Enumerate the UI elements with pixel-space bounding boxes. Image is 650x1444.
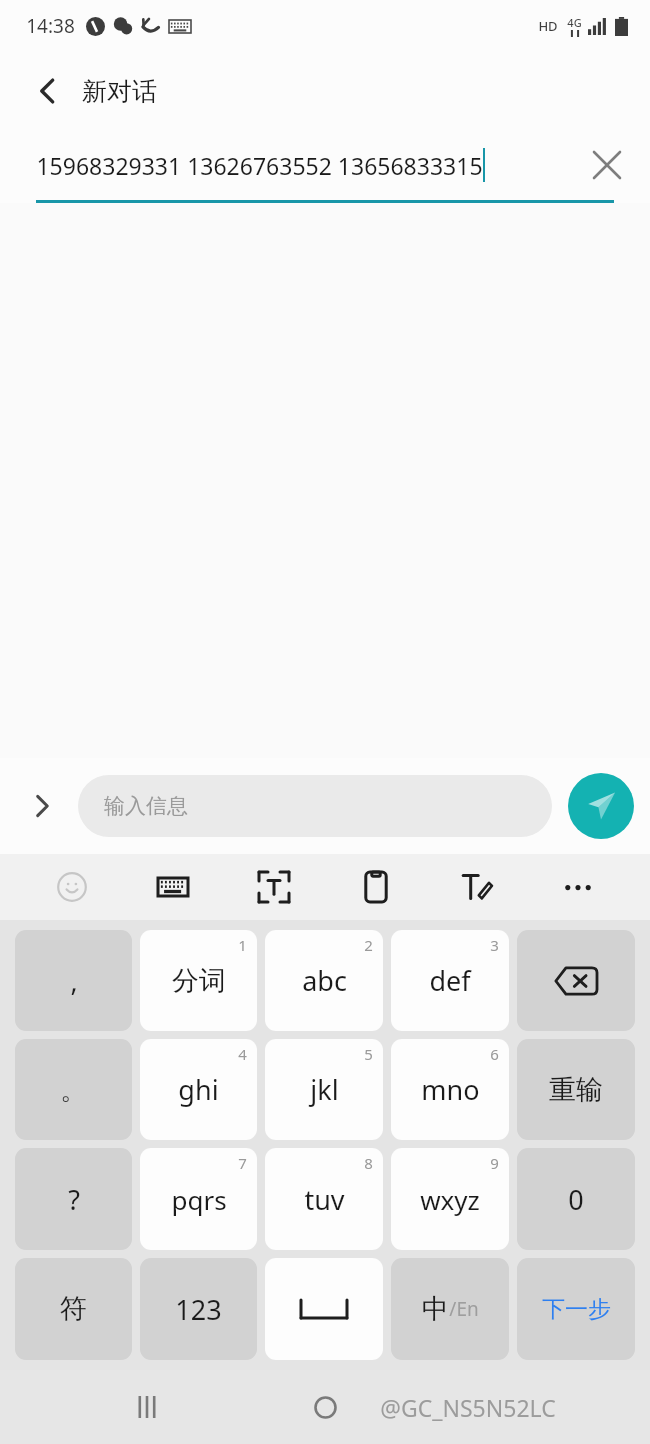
button[interactable]: Text recognition: [245, 858, 303, 916]
staticText: tuv: [304, 1181, 345, 1218]
button[interactable]: 输入信息: [78, 775, 552, 837]
staticText: 3: [490, 935, 499, 955]
button[interactable]: Space: [265, 1258, 383, 1360]
button[interactable]: tuv: [265, 1148, 383, 1250]
staticText: 6: [490, 1044, 499, 1064]
button[interactable]: Back: [20, 63, 76, 119]
staticText: 9: [490, 1153, 499, 1173]
staticText: abc: [302, 962, 347, 999]
staticText: @GC_NS5N52LC: [380, 1392, 556, 1423]
staticText: ,: [70, 962, 78, 999]
button[interactable]: Back: [472, 1375, 536, 1439]
button[interactable]: ?: [15, 1148, 132, 1250]
button[interactable]: 分词: [140, 930, 257, 1031]
staticText: 。: [60, 1073, 87, 1107]
button[interactable]: 。: [15, 1039, 132, 1140]
button[interactable]: mno: [391, 1039, 509, 1140]
staticText: 符: [60, 1292, 87, 1326]
button[interactable]: More options: [549, 858, 607, 916]
staticText: 下一步: [542, 1295, 611, 1324]
staticText: 2: [364, 935, 373, 955]
staticText: 新对话: [82, 76, 157, 107]
button[interactable]: 下一步: [517, 1258, 635, 1360]
staticText: 14:38: [26, 13, 75, 39]
button[interactable]: 中: [391, 1258, 509, 1360]
button[interactable]: 符: [15, 1258, 132, 1360]
button[interactable]: Emoji: [43, 858, 101, 916]
button[interactable]: ,: [15, 930, 132, 1031]
staticText: 4: [238, 1044, 247, 1064]
button[interactable]: pqrs: [140, 1148, 257, 1250]
staticText: /En: [449, 1296, 479, 1322]
button[interactable]: ghi: [140, 1039, 257, 1140]
staticText: 重输: [549, 1073, 603, 1107]
button[interactable]: 123: [140, 1258, 257, 1360]
button[interactable]: Handwriting: [448, 858, 506, 916]
staticText: 7: [238, 1153, 247, 1173]
button[interactable]: jkl: [265, 1039, 383, 1140]
button[interactable]: Clipboard: [347, 858, 405, 916]
staticText: 5: [364, 1044, 373, 1064]
staticText: 中: [422, 1292, 449, 1326]
staticText: 4G: [567, 15, 582, 30]
staticText: 0: [568, 1181, 584, 1218]
button[interactable]: 重输: [517, 1039, 635, 1140]
staticText: HD: [538, 17, 558, 35]
staticText: 8: [364, 1153, 373, 1173]
button[interactable]: Expand: [16, 780, 68, 832]
button[interactable]: Clear: [584, 142, 630, 188]
button[interactable]: Home: [293, 1375, 357, 1439]
staticText: 输入信息: [104, 793, 188, 819]
staticText: mno: [421, 1071, 480, 1108]
staticText: ghi: [178, 1071, 219, 1108]
button[interactable]: Keyboard: [144, 858, 202, 916]
button[interactable]: Recents: [115, 1375, 179, 1439]
staticText: pqrs: [171, 1182, 227, 1217]
staticText: wxyz: [420, 1182, 480, 1217]
button[interactable]: wxyz: [391, 1148, 509, 1250]
button[interactable]: def: [391, 930, 509, 1031]
staticText: 分词: [172, 964, 226, 998]
button[interactable]: Backspace: [517, 930, 635, 1031]
staticText: 1: [238, 935, 247, 955]
button[interactable]: Send: [568, 773, 634, 839]
button[interactable]: 0: [517, 1148, 635, 1250]
staticText: jkl: [310, 1071, 339, 1108]
staticText: 123: [175, 1291, 222, 1328]
staticText: 15968329331 13626763552 13656833315: [36, 150, 483, 181]
staticText: ?: [68, 1181, 80, 1218]
staticText: def: [429, 962, 471, 999]
button[interactable]: abc: [265, 930, 383, 1031]
